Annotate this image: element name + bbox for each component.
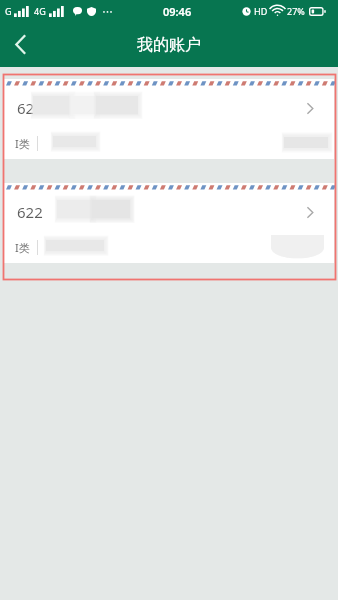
button[interactable]: 62 [4,79,334,159]
button[interactable]: 622 [4,183,334,263]
staticText: I类 [15,136,30,151]
staticText: I类 [15,240,30,255]
staticText: 62 [17,98,35,118]
staticText: 我的账户 [137,35,201,55]
staticText: 622 [17,202,43,222]
staticText: 4G [34,5,46,17]
staticText: G [5,5,12,17]
staticText: 09:46 [163,4,192,19]
staticText: 27% [287,5,305,17]
staticText: HD [254,5,268,17]
button[interactable]: Back [0,22,40,67]
